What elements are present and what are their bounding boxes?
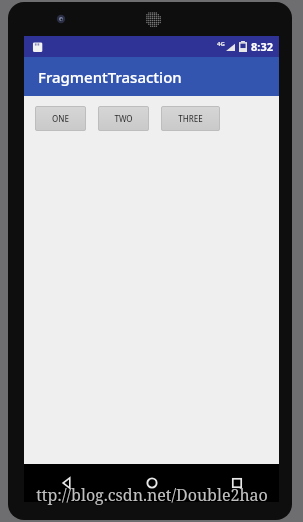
staticText: 4G <box>217 40 225 48</box>
button[interactable]: Recent apps <box>194 464 279 502</box>
button[interactable]: Home <box>109 464 194 502</box>
staticText: TWO <box>114 113 133 124</box>
staticText: 8:32 <box>251 39 273 54</box>
button[interactable]: ONE <box>35 106 86 131</box>
button[interactable]: Back <box>24 464 109 502</box>
button[interactable]: THREE <box>161 106 220 131</box>
staticText: ttp://blog.csdn.net/Double2hao <box>36 484 268 506</box>
staticText: THREE <box>178 113 203 124</box>
button[interactable]: TWO <box>98 106 149 131</box>
staticText: FragmentTrasaction <box>38 67 182 87</box>
staticText: ONE <box>52 113 69 124</box>
